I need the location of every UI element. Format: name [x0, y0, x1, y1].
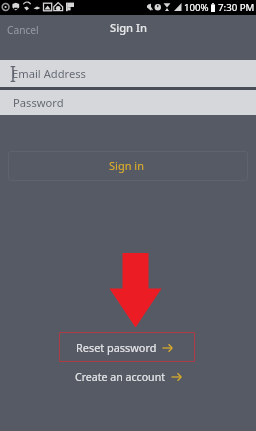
- staticText: Cancel: [7, 23, 39, 37]
- button[interactable]: Email Address: [0, 60, 256, 88]
- staticText: Create an account: [75, 370, 166, 384]
- staticText: Password: [13, 95, 64, 110]
- staticText: Sign In: [110, 20, 148, 35]
- staticText: Sign in: [109, 158, 144, 173]
- button[interactable]: Create an account: [0, 367, 256, 387]
- staticText: 100%: [184, 1, 209, 14]
- button[interactable]: Password: [0, 90, 256, 115]
- button[interactable]: Cancel: [0, 15, 46, 45]
- staticText: Email Address: [12, 66, 86, 81]
- staticText: 7:30 PM: [218, 1, 255, 14]
- button[interactable]: Reset password: [59, 332, 195, 362]
- staticText: Reset password: [76, 340, 157, 355]
- button[interactable]: Sign in: [8, 151, 248, 181]
